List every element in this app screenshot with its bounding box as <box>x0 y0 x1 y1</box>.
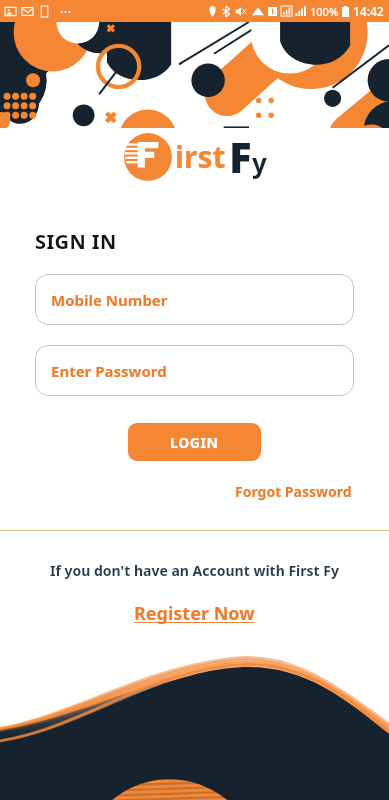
staticText: irst <box>175 136 226 177</box>
staticText: y <box>252 145 267 180</box>
staticText: Register Now <box>134 601 255 626</box>
staticText: 100% <box>310 4 339 19</box>
staticText: LOGIN <box>170 433 219 452</box>
staticText: Forgot Password <box>235 482 352 501</box>
staticText: SIGN IN <box>35 228 117 255</box>
button[interactable]: LOGIN <box>128 423 261 461</box>
staticText: Mobile Number <box>51 290 168 310</box>
button[interactable]: Enter Password <box>35 345 354 396</box>
staticText: 14:42 <box>353 3 384 19</box>
staticText: If you don't have an Account with First … <box>50 561 339 580</box>
button[interactable]: Register Now <box>130 599 259 628</box>
button[interactable]: Forgot Password <box>233 479 354 504</box>
button[interactable]: Mobile Number <box>35 274 354 325</box>
staticText: F <box>229 128 252 185</box>
staticText: Enter Password <box>51 361 167 381</box>
